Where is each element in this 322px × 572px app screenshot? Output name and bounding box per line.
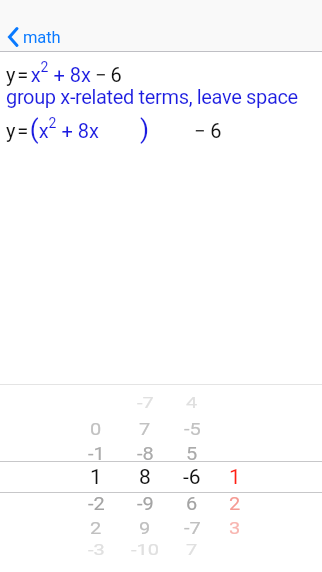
staticText: -10 (131, 541, 160, 558)
staticText: -7 (184, 518, 201, 537)
staticText: math (23, 28, 61, 47)
staticText: -6 (183, 465, 201, 490)
staticText: 1 (229, 465, 241, 490)
staticText: 4 (186, 394, 198, 411)
button[interactable]: math (4, 24, 63, 50)
staticText: y = (x2 + 8x ) − 6 (6, 114, 222, 144)
staticText: -8 (137, 443, 154, 464)
staticText: -7 (137, 394, 154, 411)
staticText: y = x2 + 8x − 6 (6, 59, 122, 87)
staticText: -2 (88, 493, 105, 514)
staticText: 9 (139, 518, 151, 537)
staticText: 3 (229, 518, 241, 537)
staticText: -1 (88, 443, 105, 464)
staticText: 2 (229, 493, 241, 514)
staticText: 7 (139, 419, 151, 438)
staticText: -9 (137, 493, 154, 514)
staticText: -3 (88, 541, 105, 558)
staticText: 2 (90, 518, 102, 537)
staticText: group x-related terms, leave space (6, 85, 298, 108)
staticText: 5 (186, 443, 198, 464)
staticText: 7 (186, 541, 198, 558)
staticText: 6 (186, 493, 198, 514)
staticText: 1 (90, 465, 102, 490)
staticText: 0 (90, 419, 102, 438)
staticText: 8 (139, 465, 151, 490)
staticText: -5 (184, 419, 201, 438)
